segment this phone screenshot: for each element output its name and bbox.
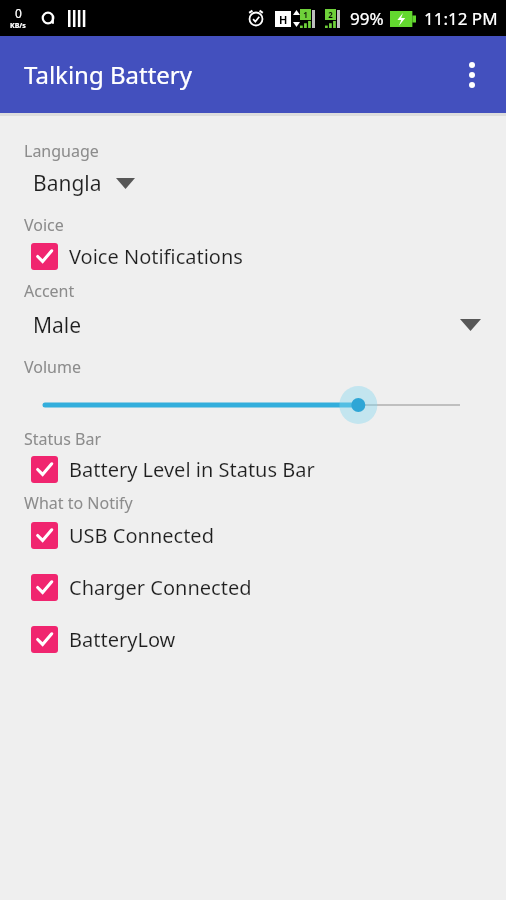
staticText: 99%: [350, 7, 384, 30]
staticText: H: [279, 12, 288, 27]
staticText: 1: [303, 9, 308, 20]
staticText: Voice Notifications: [69, 243, 243, 270]
staticText: Accent: [24, 280, 75, 302]
staticText: BatteryLow: [69, 626, 176, 653]
staticText: Voice: [24, 214, 64, 236]
button[interactable]: BatteryLow: [0, 622, 506, 656]
button[interactable]: Battery Level in Status Bar: [0, 452, 506, 486]
button[interactable]: Talking Battery: [0, 36, 506, 113]
staticText: KB/s: [10, 21, 26, 31]
button[interactable]: Bangla: [0, 162, 506, 204]
button[interactable]: Volume slider: [0, 378, 506, 428]
button[interactable]: USB Connected: [0, 518, 506, 552]
staticText: Volume: [24, 356, 81, 378]
staticText: Language: [24, 140, 99, 162]
staticText: What to Notify: [24, 492, 133, 514]
staticText: Battery Level in Status Bar: [69, 456, 315, 483]
staticText: Talking Battery: [24, 58, 192, 91]
button[interactable]: Male: [0, 302, 506, 348]
staticText: Charger Connected: [69, 574, 252, 601]
button[interactable]: More options: [448, 51, 496, 99]
staticText: Status Bar: [24, 428, 102, 450]
staticText: 11:12 PM: [424, 7, 498, 30]
staticText: Bangla: [33, 169, 102, 198]
button[interactable]: Voice Notifications: [0, 239, 506, 273]
staticText: Male: [33, 311, 82, 340]
button[interactable]: Charger Connected: [0, 570, 506, 604]
staticText: USB Connected: [69, 522, 214, 549]
staticText: 2: [328, 9, 333, 20]
staticText: 0: [15, 5, 22, 21]
